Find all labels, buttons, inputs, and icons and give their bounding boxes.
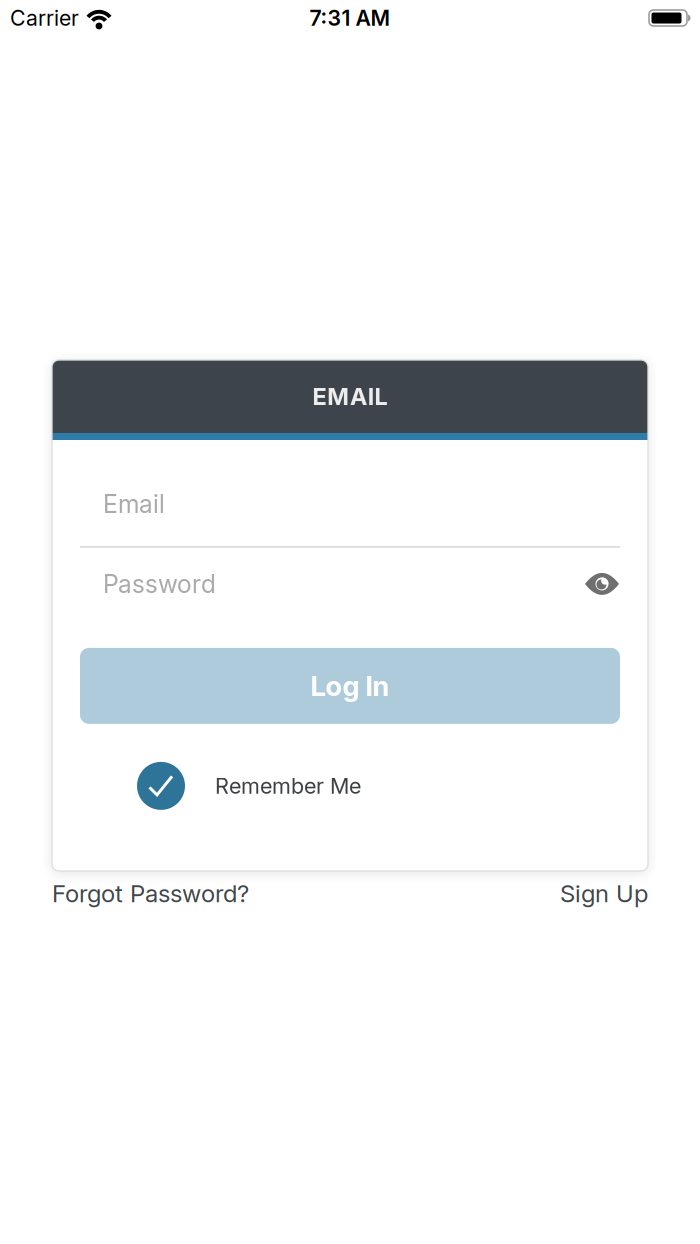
staticText: EMAIL <box>312 382 388 411</box>
staticText: Remember Me <box>215 773 361 799</box>
staticText: Carrier <box>10 5 79 31</box>
button[interactable]: Remember Me <box>137 762 361 810</box>
staticText: Email <box>103 489 165 519</box>
button[interactable]: Sign Up <box>560 879 648 908</box>
button[interactable]: Show password <box>584 573 620 595</box>
button[interactable]: Forgot Password? <box>52 879 249 908</box>
button[interactable]: Log In <box>80 648 620 724</box>
staticText: 7:31 AM <box>309 5 390 31</box>
staticText: Password <box>103 569 216 599</box>
staticText: Forgot Password? <box>52 879 249 908</box>
staticText: Log In <box>310 669 389 703</box>
staticText: Sign Up <box>560 879 648 908</box>
